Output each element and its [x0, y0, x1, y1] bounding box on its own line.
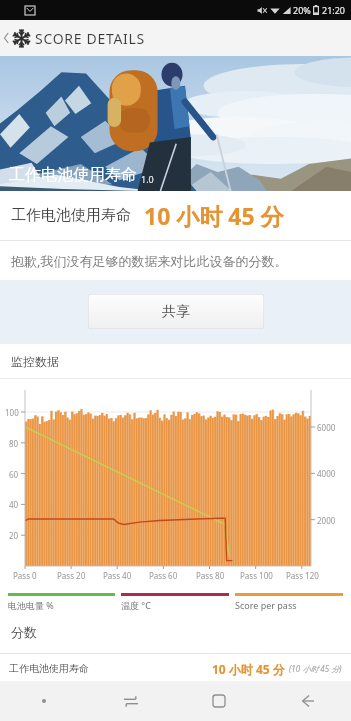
button[interactable]: Back	[0, 23, 13, 53]
staticText: 1.0	[141, 173, 154, 185]
staticText: 工作电池使用寿命	[11, 206, 131, 225]
staticText: 100	[5, 407, 19, 418]
staticText: 10 小时 45 分	[144, 200, 284, 231]
button[interactable]: Home	[175, 681, 263, 721]
staticText: Score per pass	[235, 599, 297, 611]
staticText: 21:20	[322, 4, 346, 16]
staticText: Pass 60	[149, 570, 178, 581]
button[interactable]: Back	[263, 681, 351, 721]
staticText: 40	[9, 499, 19, 510]
staticText: 6000	[317, 422, 336, 433]
staticText: 20	[9, 530, 19, 541]
button[interactable]: 共享	[88, 294, 264, 329]
staticText: 20%	[293, 4, 311, 16]
staticText: Pass 20	[57, 570, 86, 581]
staticText: 抱歉,我们没有足够的数据来对比此设备的分数。	[11, 252, 288, 270]
button[interactable]: 工作电池使用寿命	[0, 656, 351, 681]
staticText: 工作电池使用寿命	[9, 662, 89, 675]
staticText: 10 小时 45 分	[212, 661, 285, 677]
staticText: 温度 °C	[121, 599, 151, 611]
staticText: Pass 0	[13, 570, 37, 581]
staticText: SCORE DETAILS	[35, 29, 145, 48]
button[interactable]: Menu	[0, 681, 87, 721]
staticText: 工作电池使用寿命	[9, 165, 137, 185]
staticText: 4000	[317, 468, 336, 479]
staticText: 共享	[162, 303, 190, 321]
staticText: (10 小时 45 分)	[289, 663, 342, 674]
staticText: Pass 100	[240, 570, 273, 581]
staticText: 电池电量 %	[8, 599, 54, 611]
staticText: Pass 40	[103, 570, 132, 581]
staticText: 60	[9, 469, 19, 480]
staticText: 80	[9, 438, 19, 449]
staticText: Pass 120	[286, 570, 319, 581]
staticText: 分数	[11, 624, 37, 640]
staticText: Pass 80	[196, 570, 225, 581]
staticText: 2000	[317, 515, 336, 526]
button[interactable]: Recents	[87, 681, 175, 721]
staticText: 监控数据	[11, 354, 59, 369]
